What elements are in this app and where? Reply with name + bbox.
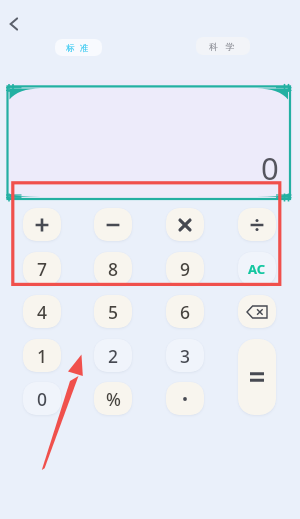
staticText: 0 — [37, 387, 48, 411]
button[interactable]: 科 学 — [196, 37, 250, 55]
button[interactable]: 8 — [94, 252, 132, 285]
button[interactable]: Multiply — [166, 208, 204, 241]
button[interactable]: Equals — [238, 339, 276, 415]
button[interactable]: 3 — [166, 339, 204, 372]
staticText: 8 — [108, 257, 119, 281]
button[interactable]: 5 — [94, 295, 132, 328]
button[interactable]: Decimal point — [166, 382, 204, 415]
button[interactable]: Divide — [238, 208, 276, 241]
staticText: 6 — [180, 300, 191, 324]
staticText: 0 — [261, 147, 279, 189]
button[interactable]: Plus — [23, 208, 61, 241]
staticText: 1 — [37, 344, 48, 368]
button[interactable]: AC — [238, 252, 276, 285]
staticText: AC — [248, 260, 266, 278]
staticText: 5 — [108, 300, 119, 324]
button[interactable]: 1 — [23, 339, 61, 372]
staticText: 9 — [180, 257, 191, 281]
button[interactable]: 6 — [166, 295, 204, 328]
staticText: 2 — [108, 344, 119, 368]
staticText: 4 — [37, 300, 48, 324]
button[interactable]: 4 — [23, 295, 61, 328]
button[interactable]: 9 — [166, 252, 204, 285]
staticText: 7 — [37, 257, 48, 281]
button[interactable]: Back — [1, 11, 27, 37]
staticText: 科 学 — [209, 40, 238, 52]
button[interactable]: Backspace — [238, 295, 276, 328]
staticText: 3 — [180, 344, 191, 368]
button[interactable]: 7 — [23, 252, 61, 285]
staticText: % — [106, 387, 121, 411]
button[interactable]: 标 准 — [55, 39, 102, 56]
button[interactable]: 0 — [23, 382, 61, 415]
staticText: 标 准 — [66, 42, 91, 54]
button[interactable]: Minus — [94, 208, 132, 241]
button[interactable]: % — [94, 382, 132, 415]
button[interactable]: 2 — [94, 339, 132, 372]
